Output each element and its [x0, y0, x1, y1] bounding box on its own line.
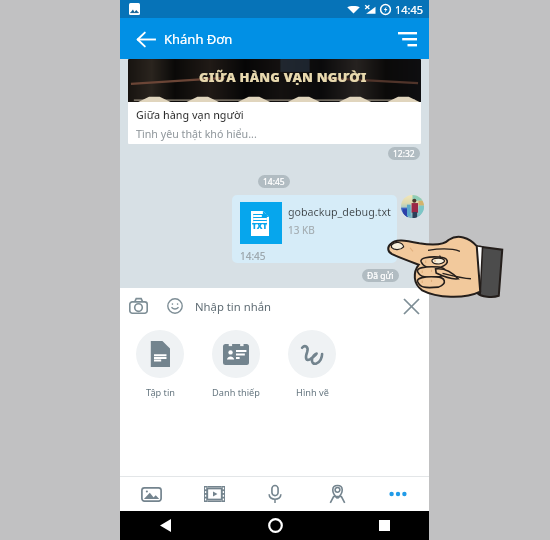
staticText: Tình yêu thật khó hiểu... [136, 127, 257, 142]
staticText: 14:45 [240, 249, 266, 263]
staticText: Tập tin [146, 386, 175, 399]
button[interactable]: TXT [232, 195, 397, 263]
staticText: 14:45 [395, 2, 424, 17]
button[interactable]: Location [320, 477, 354, 511]
button[interactable]: Video [197, 477, 231, 511]
button[interactable]: Menu [389, 21, 425, 57]
button[interactable]: Emoji [163, 294, 187, 318]
staticText: Danh thiếp [212, 386, 260, 399]
button[interactable]: Recents [369, 511, 399, 540]
button[interactable]: GIỮA HÀNG VẠN NGƯỜI [128, 59, 421, 144]
staticText: gobackup_debug.txt [288, 205, 391, 220]
button[interactable]: Photo [134, 477, 168, 511]
staticText: 12:32 [393, 148, 415, 160]
staticText: Khánh Đơn [164, 30, 233, 48]
button[interactable]: Back [150, 511, 180, 540]
button[interactable]: More [381, 477, 415, 511]
staticText: 14:45 [263, 176, 285, 188]
staticText: Hình vẽ [296, 386, 329, 399]
staticText: Nhập tin nhắn [195, 299, 271, 314]
button[interactable]: Close [396, 291, 426, 321]
button[interactable]: Hình vẽ [274, 330, 350, 399]
button[interactable]: Camera [124, 292, 152, 320]
button[interactable]: Back [126, 19, 166, 59]
button[interactable]: Home [260, 511, 290, 540]
button[interactable]: Tập tin [122, 330, 198, 399]
staticText: Giữa hàng vạn người [136, 108, 244, 123]
button[interactable]: Danh thiếp [198, 330, 274, 399]
staticText: Đã gửi [367, 270, 394, 282]
staticText: TXT [252, 220, 268, 231]
staticText: 13 KB [288, 223, 315, 237]
staticText: GIỮA HÀNG VẠN NGƯỜI [199, 68, 367, 86]
button[interactable]: Voice message [258, 477, 292, 511]
